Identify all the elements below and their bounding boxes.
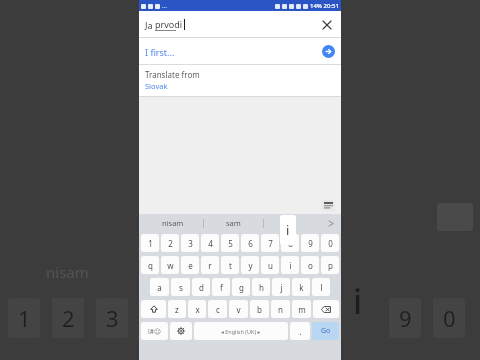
staticText: q: [148, 260, 153, 271]
staticText: 3: [188, 238, 193, 249]
button[interactable]: d: [192, 278, 210, 296]
button[interactable]: Backspace: [313, 300, 339, 318]
staticText: 3: [106, 303, 119, 333]
button[interactable]: e: [181, 256, 199, 274]
button[interactable]: 8: [281, 234, 299, 252]
button[interactable]: u: [261, 256, 279, 274]
button[interactable]: z: [168, 300, 186, 318]
staticText: ◂ English (UK) ▸: [221, 328, 261, 335]
button[interactable]: y: [241, 256, 259, 274]
button[interactable]: Send: [322, 45, 335, 58]
button[interactable]: g: [232, 278, 250, 296]
button[interactable]: t: [221, 256, 239, 274]
staticText: nisam: [162, 218, 184, 228]
staticText: n: [278, 304, 283, 315]
staticText: prvodi: [155, 18, 183, 30]
staticText: 6: [248, 238, 253, 249]
staticText: !#☺: [148, 327, 161, 336]
staticText: i: [353, 278, 363, 324]
button[interactable]: nisam: [143, 218, 203, 228]
staticText: sam: [226, 218, 241, 228]
staticText: .: [299, 326, 302, 337]
button[interactable]: Shift: [141, 300, 166, 318]
staticText: f: [220, 282, 223, 293]
button[interactable]: x: [188, 300, 206, 318]
button[interactable]: Keyboard mode: [321, 200, 335, 211]
staticText: o: [308, 260, 313, 271]
button[interactable]: 2: [161, 234, 179, 252]
staticText: Translate from: [145, 69, 200, 80]
staticText: z: [175, 304, 179, 315]
staticText: y: [248, 260, 253, 271]
button[interactable]: Clear: [319, 17, 335, 33]
staticText: nisam: [46, 262, 89, 282]
button[interactable]: p: [321, 256, 339, 274]
staticText: j: [280, 282, 283, 293]
button[interactable]: i: [281, 256, 299, 274]
button[interactable]: ◂ English (UK) ▸: [194, 322, 288, 340]
button[interactable]: s: [171, 278, 190, 296]
button[interactable]: w: [161, 256, 179, 274]
button[interactable]: o: [301, 256, 319, 274]
staticText: i: [286, 221, 290, 239]
staticText: l: [320, 282, 323, 293]
button[interactable]: f: [212, 278, 230, 296]
button[interactable]: n: [271, 300, 290, 318]
staticText: 1: [18, 303, 31, 333]
button[interactable]: 9: [301, 234, 319, 252]
staticText: 2: [168, 238, 173, 249]
staticText: 7: [268, 238, 273, 249]
staticText: 4: [208, 238, 213, 249]
button[interactable]: 6: [241, 234, 259, 252]
staticText: s: [179, 282, 183, 293]
staticText: ...: [162, 2, 167, 10]
staticText: i: [289, 260, 292, 271]
button[interactable]: j: [272, 278, 290, 296]
staticText: h: [259, 282, 264, 293]
staticText: v: [236, 304, 241, 315]
button[interactable]: 1: [141, 234, 159, 252]
button[interactable]: More suggestions: [323, 214, 337, 232]
button[interactable]: 3: [181, 234, 199, 252]
staticText: 1: [148, 238, 153, 249]
staticText: k: [299, 282, 304, 293]
button[interactable]: a: [150, 278, 169, 296]
button[interactable]: sam: [204, 218, 263, 228]
button[interactable]: v: [229, 300, 248, 318]
staticText: x: [195, 304, 200, 315]
staticText: Ja: [145, 19, 155, 31]
staticText: a: [157, 282, 162, 293]
staticText: 2: [62, 303, 75, 333]
staticText: I first...: [145, 46, 175, 58]
button[interactable]: Translate from: [139, 65, 341, 96]
staticText: e: [188, 260, 193, 271]
button[interactable]: 0: [321, 234, 339, 252]
button[interactable]: 4: [201, 234, 219, 252]
staticText: 0: [443, 303, 456, 333]
staticText: 9: [399, 303, 412, 333]
button[interactable]: r: [201, 256, 219, 274]
staticText: p: [328, 260, 333, 271]
button[interactable]: k: [292, 278, 310, 296]
button[interactable]: 5: [221, 234, 239, 252]
staticText: b: [257, 304, 262, 315]
button[interactable]: Symbols: [141, 322, 168, 340]
button[interactable]: c: [208, 300, 227, 318]
staticText: Slovak: [145, 81, 168, 91]
button[interactable]: 7: [261, 234, 279, 252]
button[interactable]: b: [250, 300, 269, 318]
button[interactable]: l: [312, 278, 330, 296]
button[interactable]: Go: [312, 322, 339, 340]
button[interactable]: Ja: [139, 11, 341, 38]
button[interactable]: .: [290, 322, 310, 340]
button[interactable]: Settings: [170, 322, 192, 340]
button[interactable]: m: [292, 300, 311, 318]
staticText: w: [167, 260, 174, 271]
staticText: 8: [288, 238, 293, 249]
staticText: 9: [308, 238, 313, 249]
button[interactable]: h: [252, 278, 270, 296]
staticText: r: [208, 260, 212, 271]
button[interactable]: q: [141, 256, 159, 274]
staticText: 0: [328, 238, 333, 249]
button[interactable]: I first...: [139, 38, 341, 65]
